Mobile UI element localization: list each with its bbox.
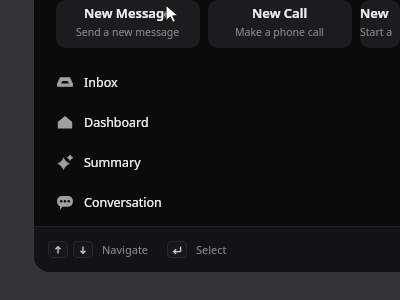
staticText: Inbox	[84, 74, 118, 91]
staticText: Send a new message	[76, 25, 180, 39]
staticText: Select	[196, 242, 227, 257]
button[interactable]: Dashboard	[34, 102, 400, 142]
button[interactable]: Key	[167, 241, 227, 258]
button[interactable]: Conversation	[34, 182, 400, 222]
button[interactable]: New Note	[360, 0, 400, 48]
button[interactable]: New Call	[208, 0, 352, 48]
staticText: Dashboard	[84, 114, 149, 131]
staticText: Start a note	[360, 25, 400, 39]
button[interactable]: Inbox	[34, 62, 400, 102]
staticText: Navigate	[102, 242, 149, 257]
button[interactable]: Key	[48, 241, 149, 258]
other: Key	[48, 241, 68, 258]
button[interactable]: Summary	[34, 142, 400, 182]
staticText: Summary	[84, 154, 141, 171]
other: Key	[167, 241, 187, 258]
staticText: Make a phone call	[235, 25, 325, 39]
other: Key	[73, 241, 93, 258]
button[interactable]: New Message	[56, 0, 200, 48]
staticText: New Call	[252, 4, 308, 22]
staticText: New Note	[360, 4, 400, 22]
staticText: Conversation	[84, 194, 162, 211]
staticText: New Message	[84, 4, 172, 22]
